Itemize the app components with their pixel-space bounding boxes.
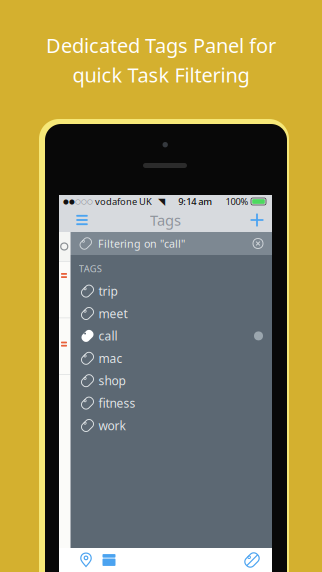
- staticText: meet: [98, 305, 127, 321]
- button[interactable]: work: [70, 414, 272, 437]
- button[interactable]: call: [70, 325, 272, 347]
- button[interactable]: Add tag: [243, 208, 271, 232]
- staticText: fitness: [98, 395, 135, 411]
- staticText: 9:14 am: [178, 195, 212, 208]
- button[interactable]: fitness: [70, 392, 272, 414]
- staticText: quick Task Filtering: [72, 62, 249, 88]
- staticText: ◥: [152, 196, 165, 207]
- staticText: work: [98, 417, 125, 433]
- button[interactable]: mac: [70, 347, 272, 369]
- button[interactable]: Calendar: [99, 550, 119, 570]
- staticText: shop: [98, 373, 125, 389]
- staticText: trip: [98, 283, 117, 299]
- staticText: TAGS: [79, 262, 102, 275]
- staticText: ○○○: [75, 198, 93, 205]
- button[interactable]: trip: [70, 280, 272, 302]
- staticText: ●●: [63, 198, 75, 205]
- staticText: mac: [98, 350, 122, 366]
- button[interactable]: Location: [76, 550, 96, 570]
- button[interactable]: Menu: [68, 208, 96, 232]
- staticText: Tags: [150, 210, 181, 230]
- staticText: vodafone UK: [93, 195, 152, 208]
- staticText: Filtering on "call": [98, 236, 185, 251]
- button[interactable]: Clear filter: [251, 236, 265, 250]
- button[interactable]: shop: [70, 369, 272, 392]
- button[interactable]: Clear tag filter: [242, 550, 262, 570]
- button[interactable]: meet: [70, 302, 272, 325]
- staticText: 100%: [225, 195, 248, 208]
- staticText: Dedicated Tags Panel for: [46, 32, 276, 59]
- staticText: call: [98, 328, 117, 344]
